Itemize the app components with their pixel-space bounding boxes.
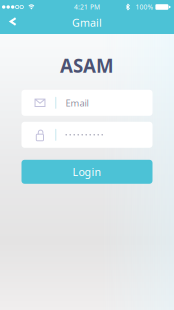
staticText: Email bbox=[65, 97, 88, 109]
staticText: 100% bbox=[135, 3, 153, 11]
staticText: Login bbox=[72, 165, 101, 179]
button[interactable]: Login bbox=[21, 160, 152, 184]
button[interactable] bbox=[21, 122, 152, 148]
button[interactable]: Email bbox=[21, 90, 152, 116]
staticText: ASAM bbox=[60, 53, 114, 78]
staticText: Gmail bbox=[72, 15, 102, 30]
staticText: 4:21 PM bbox=[74, 3, 100, 11]
button[interactable]: Back bbox=[0, 15, 24, 33]
